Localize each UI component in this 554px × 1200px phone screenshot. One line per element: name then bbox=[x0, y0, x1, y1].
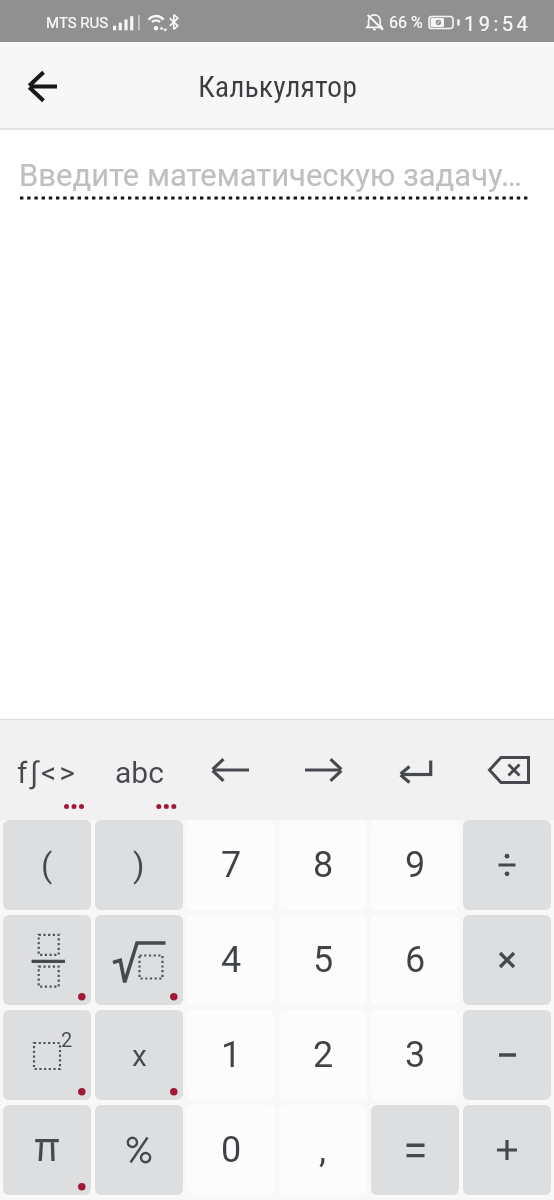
button[interactable] bbox=[463, 1010, 551, 1100]
button[interactable] bbox=[463, 820, 551, 910]
staticText: 19:54 bbox=[464, 12, 532, 35]
staticText: 66 % bbox=[389, 13, 423, 32]
button[interactable]: 4 bbox=[187, 915, 275, 1005]
button[interactable]: , bbox=[279, 1105, 367, 1195]
button[interactable]: 7 bbox=[187, 820, 275, 910]
staticText: 6 bbox=[405, 939, 426, 981]
button[interactable] bbox=[369, 719, 461, 820]
staticText: ( bbox=[41, 846, 53, 885]
button[interactable]: f∫<> bbox=[0, 719, 92, 820]
button[interactable]: 9 bbox=[371, 820, 459, 910]
button[interactable]: x bbox=[95, 1010, 183, 1100]
staticText: 7 bbox=[221, 844, 242, 886]
button[interactable] bbox=[371, 1105, 459, 1195]
button[interactable] bbox=[463, 915, 551, 1005]
button[interactable]: 3 bbox=[371, 1010, 459, 1100]
staticText: 3 bbox=[405, 1034, 426, 1076]
button[interactable] bbox=[95, 1105, 183, 1195]
staticText: f∫<> bbox=[17, 755, 79, 790]
staticText: 9 bbox=[405, 844, 426, 886]
button[interactable]: 1 bbox=[187, 1010, 275, 1100]
staticText: MTS RUS bbox=[46, 14, 109, 32]
staticText: 4 bbox=[221, 939, 242, 981]
staticText: 1 bbox=[221, 1034, 242, 1076]
button[interactable]: ) bbox=[95, 820, 183, 910]
button[interactable] bbox=[14, 56, 72, 114]
button[interactable]: 6 bbox=[371, 915, 459, 1005]
staticText: 8 bbox=[313, 844, 334, 886]
button[interactable]: 5 bbox=[279, 915, 367, 1005]
button[interactable] bbox=[95, 915, 183, 1005]
button[interactable] bbox=[277, 719, 369, 820]
button[interactable] bbox=[3, 1105, 91, 1195]
button[interactable]: 2 bbox=[3, 1010, 91, 1100]
staticText: 2 bbox=[313, 1034, 334, 1076]
staticText: , bbox=[319, 1129, 327, 1171]
button[interactable] bbox=[185, 719, 277, 820]
staticText: 0 bbox=[221, 1129, 242, 1171]
button[interactable]: ( bbox=[3, 820, 91, 910]
staticText: abc bbox=[115, 755, 164, 790]
button[interactable]: 0 bbox=[187, 1105, 275, 1195]
staticText: 5 bbox=[313, 939, 334, 981]
staticText: Введите математическую задачу… bbox=[19, 157, 522, 193]
button[interactable]: 2 bbox=[279, 1010, 367, 1100]
button[interactable]: abc bbox=[92, 719, 184, 820]
button[interactable] bbox=[462, 719, 554, 820]
staticText: ) bbox=[133, 846, 145, 885]
staticText: x bbox=[132, 1038, 147, 1073]
staticText: Калькулятор bbox=[198, 69, 357, 104]
button[interactable] bbox=[463, 1105, 551, 1195]
staticText: 2 bbox=[61, 1028, 73, 1051]
button[interactable] bbox=[3, 915, 91, 1005]
button[interactable]: 8 bbox=[279, 820, 367, 910]
